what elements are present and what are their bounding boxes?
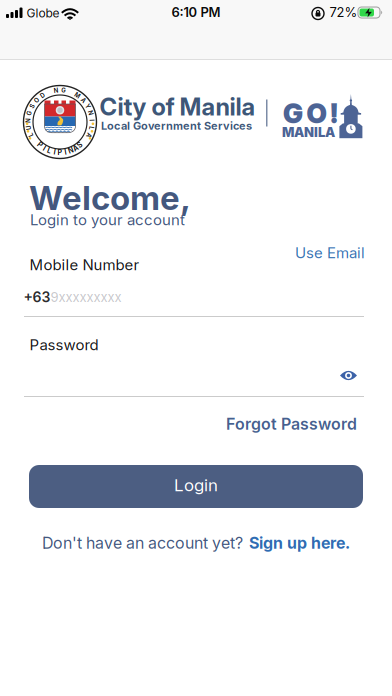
staticText: I (54, 148, 56, 156)
staticText: L (90, 124, 93, 131)
staticText: M (75, 92, 81, 99)
staticText: S (77, 141, 82, 149)
staticText: S (30, 103, 34, 110)
staticText: G (27, 110, 32, 117)
staticText: City of Manila (99, 92, 255, 121)
staticText: Sign up here. (249, 533, 350, 552)
staticText: Login (174, 475, 218, 495)
staticText: 9xxxxxxxxx (50, 290, 121, 305)
staticText: +63 (23, 289, 50, 305)
staticText: A (73, 144, 78, 152)
staticText: MANILA (282, 124, 335, 140)
button[interactable]: Sign up here. (249, 533, 350, 552)
button[interactable]: Use Email (295, 244, 365, 262)
staticText: L (29, 131, 32, 138)
staticText: O (34, 97, 39, 104)
staticText: Don't have an account yet? (42, 533, 243, 552)
staticText: Welcome, (29, 178, 191, 217)
staticText: U (27, 124, 31, 131)
staticText: N (88, 110, 93, 117)
staticText: Local Government Services (101, 119, 252, 132)
staticText: Mobile Number (29, 256, 139, 274)
staticText: Login to your account (30, 211, 185, 229)
staticText: GO! (283, 97, 338, 129)
button[interactable] (339, 366, 358, 385)
staticText: P (37, 141, 42, 149)
staticText: N (54, 87, 59, 94)
staticText: A (81, 97, 85, 104)
button[interactable]: Forgot Password (226, 414, 357, 433)
staticText: D (40, 92, 44, 99)
staticText: P (57, 148, 62, 157)
staticText: Y (86, 103, 90, 110)
staticText: 72% (329, 4, 357, 20)
staticText: N (68, 146, 73, 155)
staticText: N (26, 117, 31, 124)
staticText: 6:10 PM (171, 4, 220, 20)
staticText: I (64, 148, 66, 156)
staticText: I (43, 144, 45, 152)
staticText: Forgot Password (226, 414, 357, 433)
staticText: Use Email (295, 244, 365, 262)
staticText: G (61, 87, 66, 94)
staticText: Globe (26, 6, 59, 20)
staticText: A (87, 131, 91, 138)
button[interactable]: Login (29, 465, 363, 508)
staticText: Password (29, 336, 98, 354)
staticText: L (47, 146, 51, 155)
staticText: I (91, 117, 93, 124)
